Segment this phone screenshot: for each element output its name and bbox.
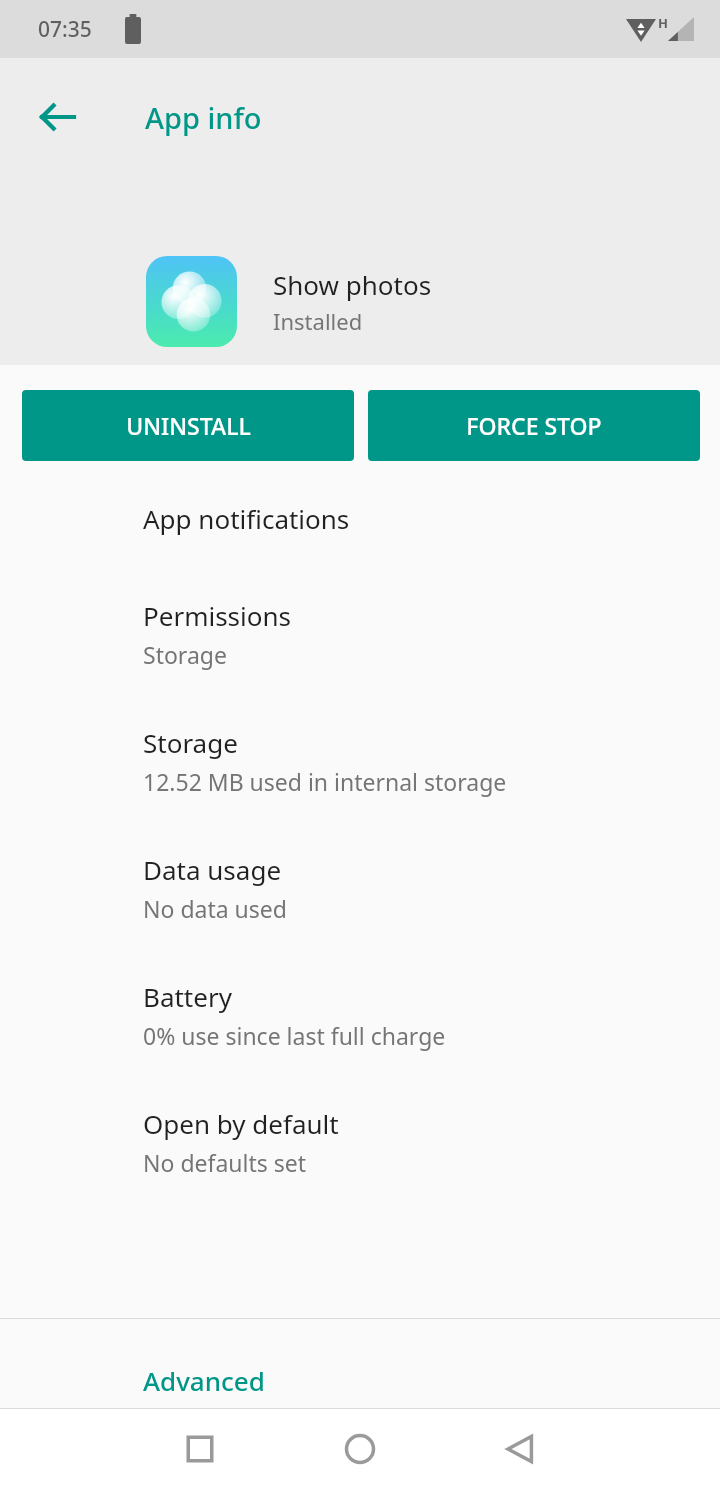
staticText: Open by default (143, 1106, 339, 1141)
button[interactable]: Battery (0, 924, 720, 1051)
staticText: H (658, 14, 668, 32)
button[interactable]: UNINSTALL (22, 390, 354, 461)
staticText: FORCE STOP (466, 410, 602, 441)
staticText: No data used (143, 893, 287, 924)
button[interactable]: Advanced (0, 1319, 720, 1408)
staticText: Storage (143, 639, 227, 670)
button[interactable]: FORCE STOP (368, 390, 700, 461)
staticText: App info (145, 98, 262, 137)
button[interactable]: Back (480, 1409, 560, 1489)
staticText: Installed (273, 306, 363, 336)
staticText: Battery (143, 979, 232, 1014)
staticText: Permissions (143, 598, 292, 633)
button[interactable]: Home (320, 1409, 400, 1489)
button[interactable]: Open by default (0, 1051, 720, 1178)
staticText: 0% use since last full charge (143, 1020, 446, 1051)
staticText: App notifications (143, 501, 350, 536)
staticText: Storage (143, 725, 238, 760)
button[interactable]: Storage (0, 670, 720, 797)
button[interactable]: Back (24, 84, 90, 150)
staticText: 12.52 MB used in internal storage (143, 766, 507, 797)
button[interactable]: Recent apps (160, 1409, 240, 1489)
staticText: Advanced (143, 1363, 265, 1398)
button[interactable]: App notifications (0, 501, 720, 536)
staticText: Data usage (143, 852, 282, 887)
staticText: No defaults set (143, 1147, 307, 1178)
staticText: Show photos (273, 267, 432, 302)
staticText: UNINSTALL (126, 410, 251, 441)
button[interactable]: Permissions (0, 536, 720, 670)
button[interactable]: Data usage (0, 797, 720, 924)
staticText: 07:35 (38, 15, 92, 44)
